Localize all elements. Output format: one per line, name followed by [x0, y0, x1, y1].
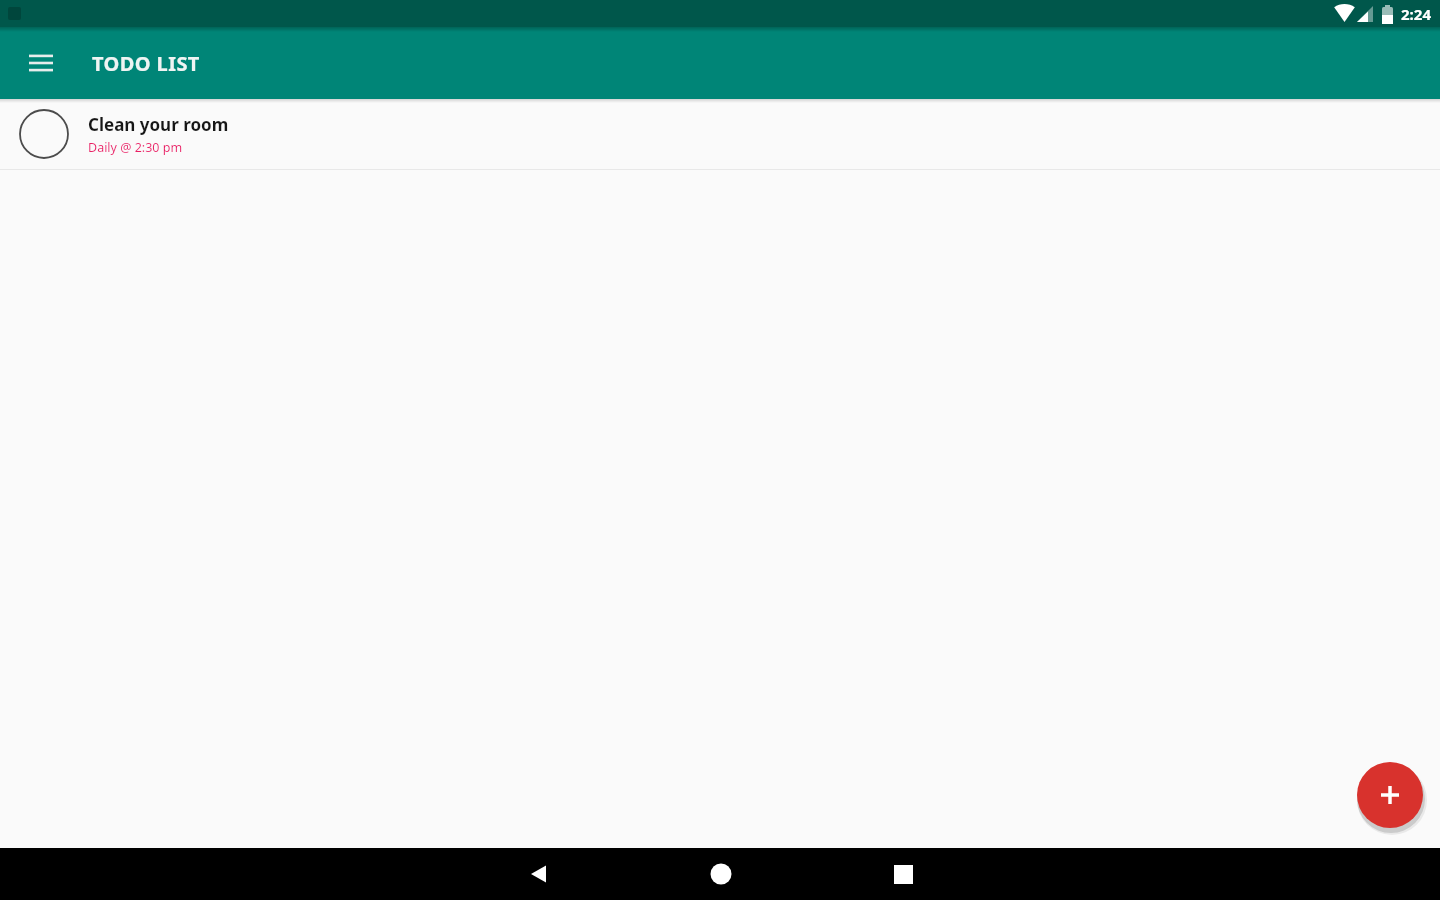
staticText: Daily @ 2:30 pm [88, 139, 183, 156]
staticText: TODO LIST [92, 50, 200, 77]
button[interactable] [1357, 762, 1423, 828]
staticText: 2:24 [1401, 4, 1431, 24]
button[interactable] [697, 850, 745, 898]
button[interactable] [515, 850, 563, 898]
staticText: Clean your room [88, 113, 229, 136]
button[interactable] [879, 850, 927, 898]
button[interactable]: Clean your room [0, 99, 1440, 169]
button[interactable] [17, 39, 65, 87]
